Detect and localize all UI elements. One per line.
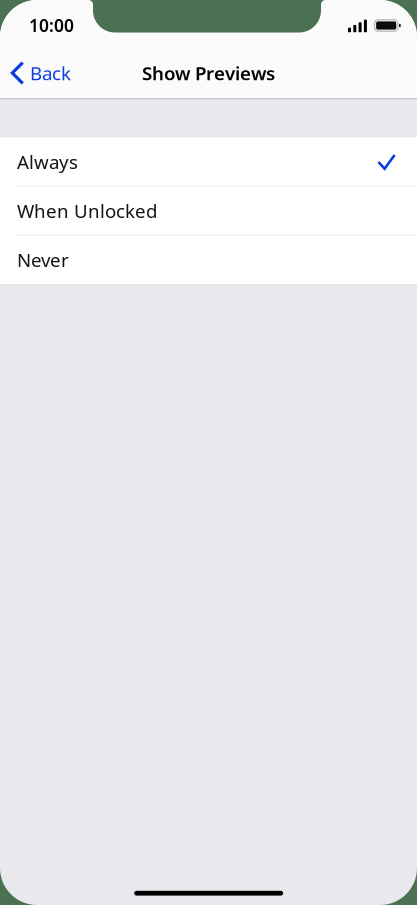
- button[interactable]: Never: [0, 235, 417, 284]
- staticText: Never: [17, 247, 69, 272]
- staticText: Show Previews: [142, 61, 275, 85]
- button[interactable]: When Unlocked: [0, 186, 417, 235]
- staticText: Always: [17, 149, 78, 174]
- button[interactable]: Back: [1, 51, 91, 95]
- staticText: Back: [30, 61, 71, 85]
- staticText: 10:00: [29, 14, 74, 37]
- staticText: When Unlocked: [17, 198, 157, 223]
- button[interactable]: Always: [0, 137, 417, 186]
